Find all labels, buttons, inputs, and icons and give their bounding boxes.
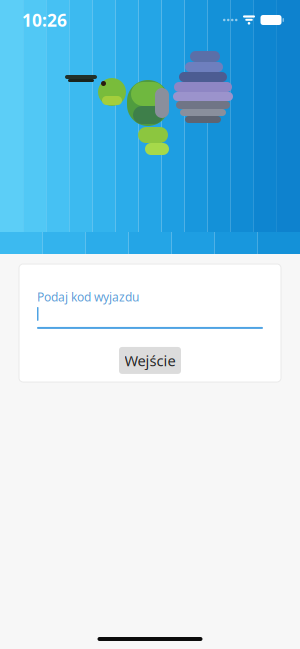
staticText: Podaj kod wyjazdu (37, 289, 139, 305)
staticText: 10:26 (22, 8, 67, 31)
staticText: Wejście (124, 351, 175, 370)
button[interactable]: Wejście (119, 347, 181, 374)
